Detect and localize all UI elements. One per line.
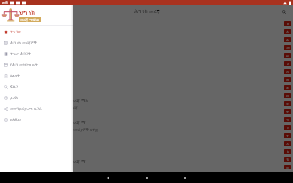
button[interactable]: ሕግ ነክ መረጃ ማ [0, 115, 293, 137]
staticText: ሕግ ነክ መረጃ [134, 7, 160, 14]
staticText: ሐ [286, 38, 289, 41]
staticText: ሕግ ነክ መረጃ [57, 105, 78, 111]
staticText: ከ [287, 150, 289, 153]
staticText: ዕልባት [10, 74, 20, 78]
staticText: አ [286, 142, 289, 145]
staticText: ሠ [286, 54, 289, 57]
button[interactable]: ፍለጋ [0, 81, 73, 92]
button[interactable]: Home [142, 173, 152, 183]
button[interactable]: ዕልባት [0, 70, 73, 81]
button[interactable]: ወ [284, 165, 291, 169]
staticText: ኀ [286, 118, 289, 121]
staticText: ዋና ገጽ [10, 29, 22, 35]
staticText: ተ [286, 102, 289, 105]
staticText: ሕግ ነክ መረጃ ማ [57, 119, 86, 125]
button[interactable]: ሠ [284, 53, 291, 58]
button[interactable]: ቸ [284, 109, 291, 114]
button[interactable]: ኸ [284, 157, 291, 162]
staticText: በ [286, 94, 289, 97]
staticText: ፍለጋ [10, 85, 18, 89]
staticText: ህግ ነክ [19, 9, 36, 17]
button[interactable]: ኘ [284, 133, 291, 138]
staticText: ስለዚህ [10, 118, 21, 122]
button[interactable]: ሕግ ነክ መረጃዎች [0, 37, 73, 48]
button[interactable]: ሕግ ነክ መረጃ ማ [0, 154, 293, 176]
staticText: ለ [286, 30, 289, 33]
button[interactable]: ረ [284, 61, 291, 66]
button[interactable]: ሀ [284, 21, 291, 26]
button[interactable]: ሕግ ነክ መረጃ ማዕ [0, 93, 293, 115]
staticText: ሕግ ነክ መረጃዎች [10, 40, 37, 46]
button[interactable]: የሕግ መዝገብ ቤት [0, 59, 73, 70]
staticText: መ [286, 46, 290, 49]
staticText: ሰ [286, 70, 289, 73]
staticText: wifi [2, 0, 8, 5]
button[interactable]: ስለዚህ [0, 114, 73, 125]
button[interactable]: Search [280, 8, 288, 16]
button[interactable]: መ [284, 45, 291, 50]
button[interactable]: ሸ [284, 77, 291, 82]
button[interactable]: ነ [284, 125, 291, 130]
staticText: ኘ [286, 134, 289, 137]
staticText: ሕግ ነክ መረጃ ማ [57, 158, 86, 164]
staticText: ወ [286, 166, 289, 169]
button[interactable]: ከ [284, 149, 291, 154]
button[interactable]: ሐ [284, 37, 291, 42]
button[interactable]: Back [103, 173, 113, 183]
staticText: ቀ [286, 86, 289, 89]
button[interactable]: ታሪክ [0, 92, 73, 103]
staticText: ሸ [286, 78, 289, 81]
button[interactable]: መተግበሪያውን አጋራ [0, 103, 73, 114]
button[interactable]: ሰ [284, 69, 291, 74]
staticText: ታሪክ [10, 96, 18, 100]
staticText: ረ [287, 62, 289, 65]
staticText: ቸ [286, 110, 289, 113]
staticText: መረጃ ማዕከል [20, 17, 40, 22]
button[interactable]: ቀ [284, 85, 291, 90]
button[interactable]: Recents [180, 173, 190, 183]
staticText: ኸ [286, 158, 289, 161]
staticText: ደንቦችና መመሪያዎች አዋጅ [57, 127, 99, 133]
button[interactable]: ዋናው ሕግጋት [0, 48, 73, 59]
staticText: ነ [287, 126, 289, 129]
button[interactable]: ተ [284, 101, 291, 106]
button[interactable]: አ [284, 141, 291, 146]
button[interactable]: ኀ [284, 117, 291, 122]
button[interactable]: በ [284, 93, 291, 98]
button[interactable]: ለ [284, 29, 291, 34]
staticText: መተግበሪያውን አጋራ [10, 106, 42, 112]
staticText: የሕግ መዝገብ ቤት [10, 62, 38, 68]
button[interactable]: ዋና ገጽ [0, 26, 73, 37]
staticText: ሀ [287, 22, 289, 25]
staticText: ዋናው ሕግጋት [10, 51, 32, 57]
staticText: ሕግ ነክ መረጃ ማዕ [57, 97, 88, 103]
